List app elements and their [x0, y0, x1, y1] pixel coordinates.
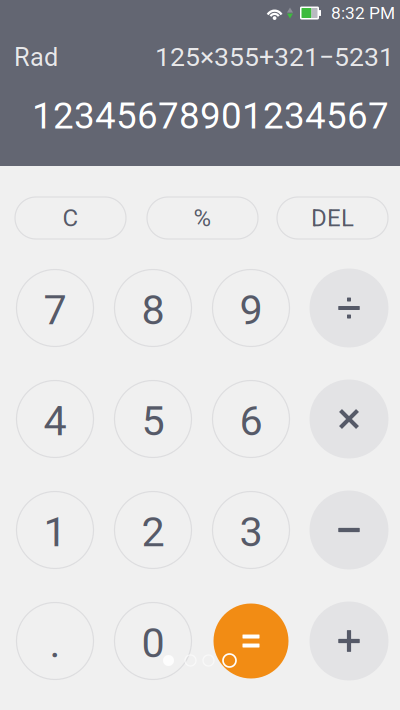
button[interactable]: Multiply: [300, 370, 398, 468]
button[interactable]: Equals: [202, 592, 300, 690]
button[interactable]: 8: [104, 259, 202, 357]
staticText: 5: [141, 397, 164, 445]
button[interactable]: DEL: [277, 197, 388, 239]
button[interactable]: 3: [202, 481, 300, 579]
button[interactable]: Divide: [300, 259, 398, 357]
staticText: 8:32 PM: [331, 3, 395, 23]
staticText: Rad: [14, 43, 58, 72]
button[interactable]: 1: [6, 481, 104, 579]
staticText: .: [49, 619, 60, 667]
staticText: 4: [43, 397, 66, 445]
staticText: 3: [239, 508, 262, 556]
button[interactable]: %: [147, 197, 258, 239]
staticText: C: [62, 204, 78, 232]
button[interactable]: C: [15, 197, 126, 239]
staticText: 1: [43, 508, 66, 556]
button[interactable]: Minus: [300, 481, 398, 579]
staticText: 6: [239, 397, 262, 445]
button[interactable]: 9: [202, 259, 300, 357]
staticText: DEL: [311, 204, 354, 232]
button[interactable]: 7: [6, 259, 104, 357]
staticText: 8: [141, 286, 164, 334]
button[interactable]: .: [6, 592, 104, 690]
staticText: %: [193, 204, 211, 232]
button[interactable]: Plus: [300, 592, 398, 690]
button[interactable]: 6: [202, 370, 300, 468]
staticText: 12345678901234567: [32, 94, 389, 137]
staticText: 7: [43, 286, 66, 334]
staticText: 125×355+321−5231: [155, 41, 394, 73]
button[interactable]: 0: [104, 592, 202, 690]
button[interactable]: 2: [104, 481, 202, 579]
button[interactable]: 5: [104, 370, 202, 468]
staticText: 9: [239, 286, 262, 334]
staticText: 0: [141, 619, 164, 667]
button[interactable]: 4: [6, 370, 104, 468]
staticText: 2: [141, 508, 164, 556]
